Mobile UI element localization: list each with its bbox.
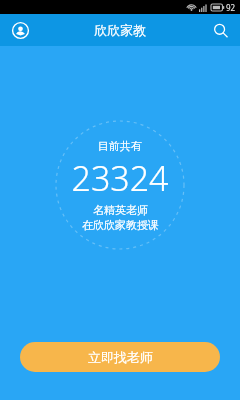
staticText: 名精英老师 [93, 203, 148, 217]
staticText: 23324 [71, 155, 169, 201]
button[interactable]: 立即找老师 [20, 342, 220, 372]
button[interactable]: Profile [8, 18, 32, 42]
staticText: 92 [226, 2, 236, 13]
staticText: 立即找老师 [88, 349, 153, 365]
staticText: 在欣欣家教授课 [82, 218, 159, 232]
staticText: 欣欣家教 [94, 22, 146, 38]
staticText: 目前共有 [98, 139, 142, 153]
button[interactable]: Search [208, 18, 232, 42]
